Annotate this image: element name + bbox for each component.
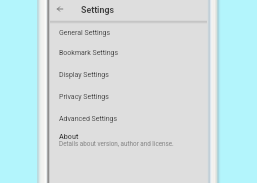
staticText: Bookmark Settings xyxy=(59,49,119,57)
staticText: Privacy Settings xyxy=(59,93,109,101)
staticText: Details about version, author and licens… xyxy=(59,140,174,147)
button[interactable] xyxy=(50,88,207,109)
staticText: Display Settings xyxy=(59,71,109,79)
staticText: General Settings xyxy=(59,29,111,37)
button[interactable] xyxy=(50,110,207,131)
button[interactable] xyxy=(50,129,207,152)
button[interactable] xyxy=(50,44,207,65)
staticText: Settings xyxy=(81,5,114,15)
staticText: About xyxy=(59,132,79,140)
button[interactable] xyxy=(50,66,207,87)
button[interactable] xyxy=(50,24,207,45)
staticText: Advanced Settings xyxy=(59,115,118,123)
button[interactable]: Navigate up xyxy=(50,0,68,20)
